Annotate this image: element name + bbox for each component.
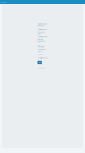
staticText: Forgot password (37, 39, 45, 42)
button[interactable]: Home (0, 0, 7, 4)
staticText: Terms and rules (37, 49, 45, 52)
staticText: Acme Co (1, 1, 7, 3)
button[interactable]: Forgot password (37, 39, 45, 42)
staticText: Sign in to your account (37, 23, 47, 26)
staticText: Submit form now (37, 57, 47, 59)
button[interactable]: Go (37, 61, 42, 64)
staticText: More information (37, 44, 44, 48)
staticText: Password field (37, 31, 45, 35)
staticText: Remember me (37, 36, 47, 38)
staticText: Email address (37, 28, 47, 30)
staticText: Go (39, 62, 41, 63)
staticText: Privacy (37, 53, 43, 55)
